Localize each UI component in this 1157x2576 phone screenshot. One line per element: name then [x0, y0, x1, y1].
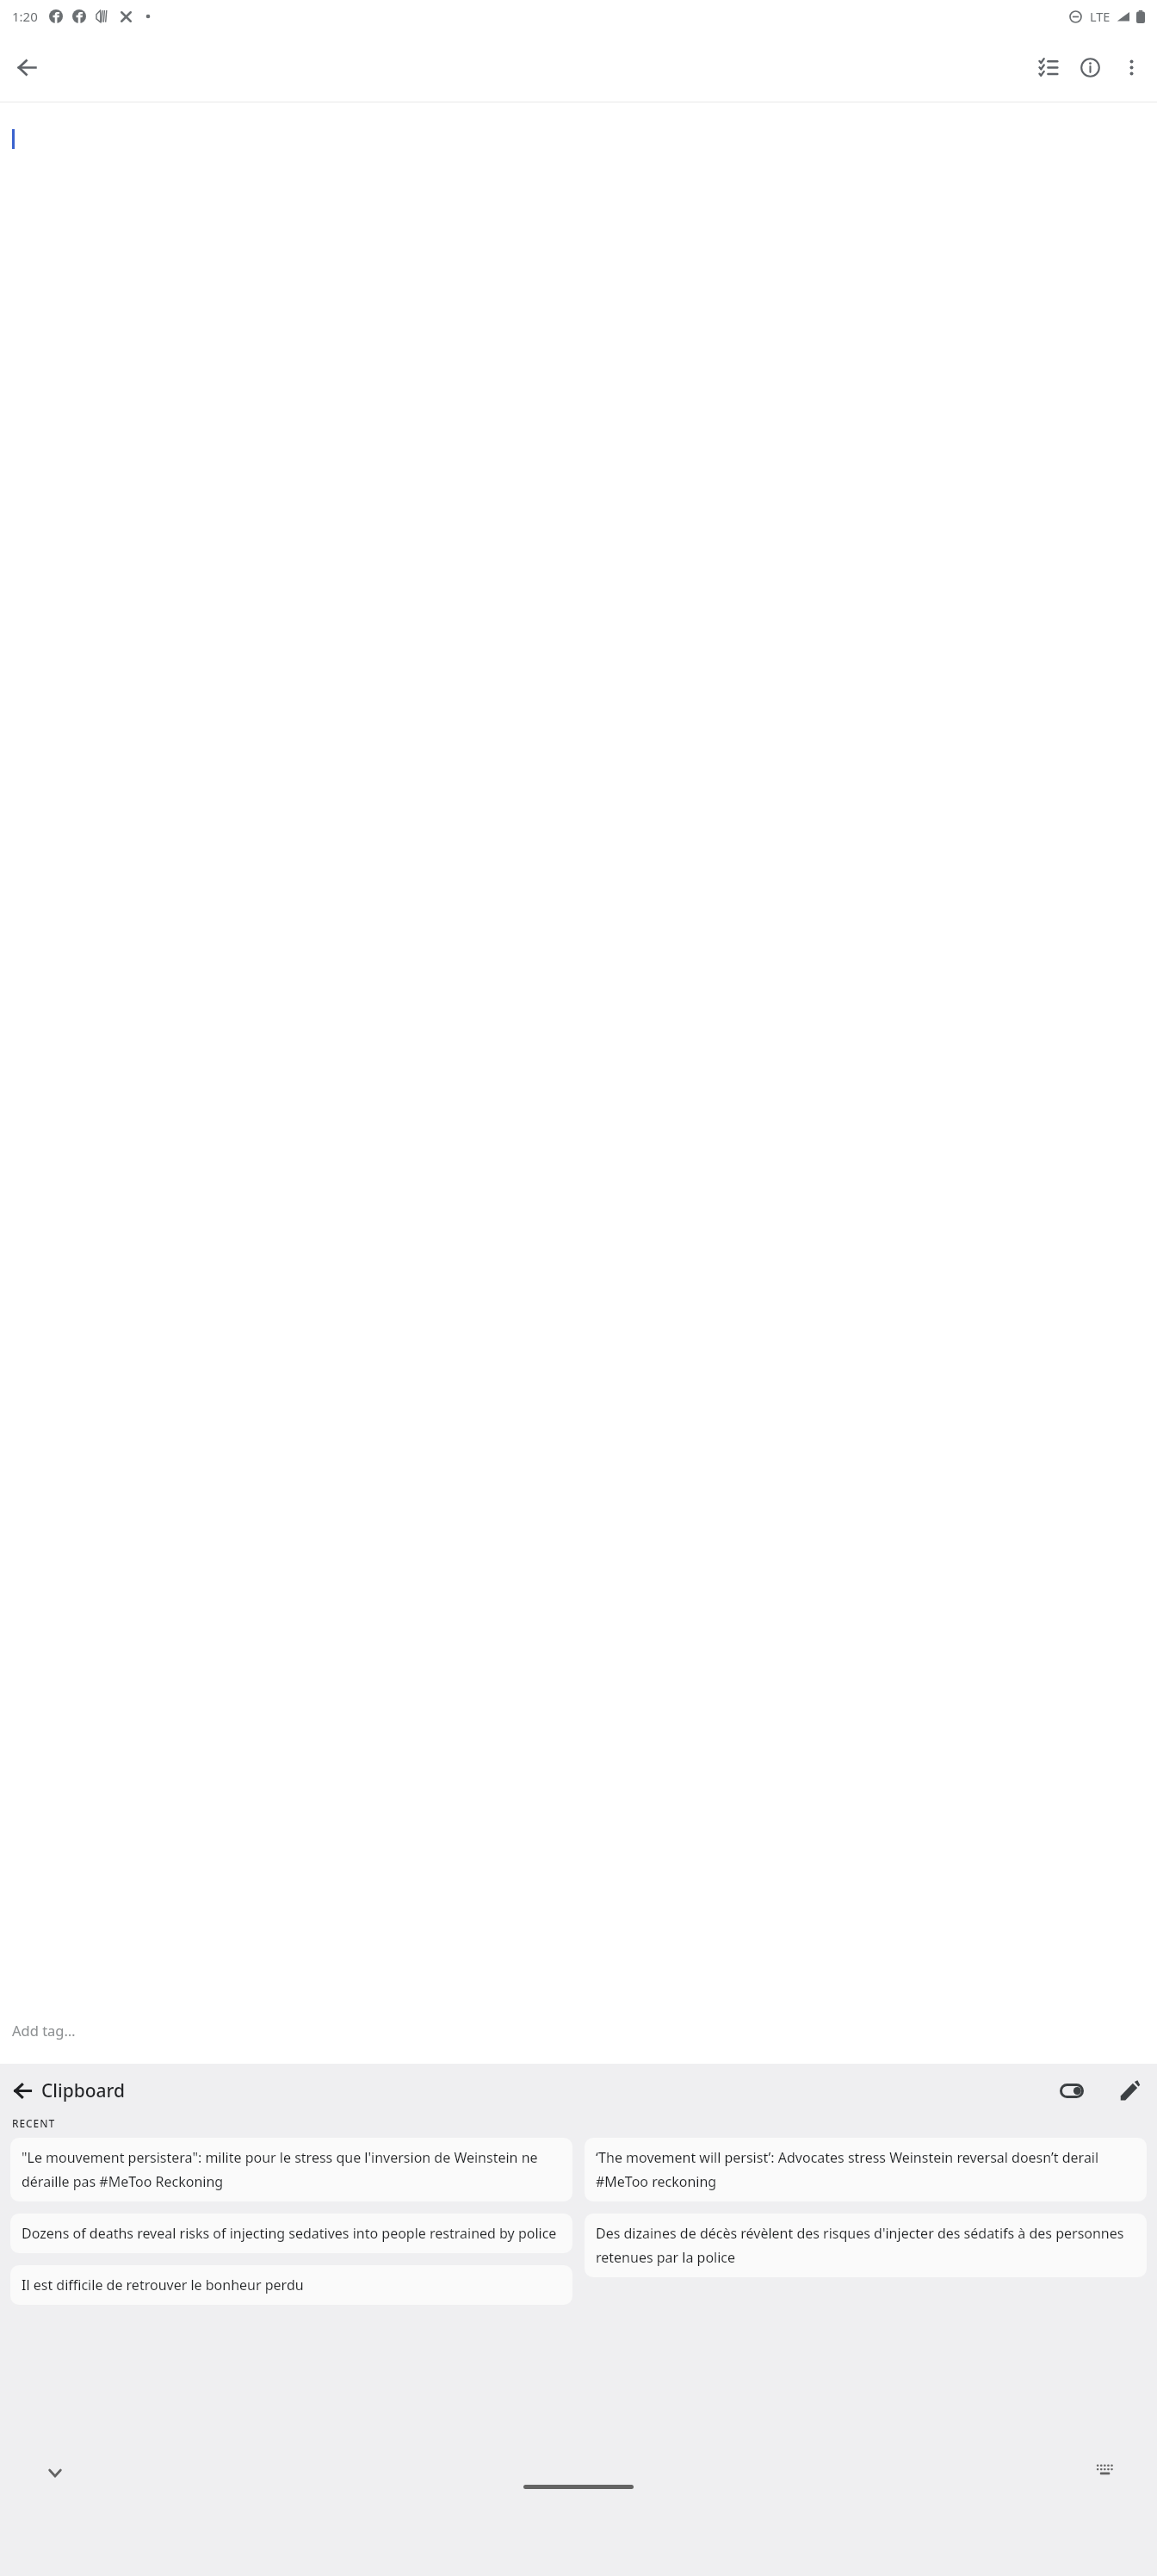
- button[interactable]: Il est difficile de retrouver le bonheur…: [10, 2265, 572, 2305]
- staticText: 1:20: [12, 8, 38, 25]
- button[interactable]: Checklist: [1028, 46, 1069, 88]
- staticText: LTE: [1090, 8, 1111, 25]
- staticText: ‘The movement will persist’: Advocates s…: [596, 2148, 1135, 2191]
- staticText: Dozens of deaths reveal risks of injecti…: [22, 2224, 557, 2243]
- button[interactable]: Hide keyboard: [34, 2452, 76, 2493]
- staticText: RECENT: [12, 2116, 56, 2130]
- staticText: Clipboard: [41, 2078, 126, 2103]
- button[interactable]: Toggle clipboard: [1052, 2071, 1092, 2110]
- button[interactable]: Switch keyboard: [1085, 2449, 1126, 2490]
- staticText: Des dizaines de décès révèlent des risqu…: [596, 2224, 1135, 2267]
- staticText: "Le mouvement persistera": milite pour l…: [22, 2148, 561, 2191]
- button[interactable]: "Le mouvement persistera": milite pour l…: [10, 2138, 572, 2201]
- button[interactable]: More options: [1111, 46, 1152, 88]
- staticText: Add tag…: [12, 2021, 76, 2040]
- button[interactable]: Dozens of deaths reveal risks of injecti…: [10, 2214, 572, 2253]
- button[interactable]: Clipboard: [3, 2071, 138, 2109]
- button[interactable]: Info: [1069, 46, 1111, 88]
- button[interactable]: ‘The movement will persist’: Advocates s…: [585, 2138, 1147, 2201]
- button[interactable]: Edit: [1111, 2071, 1150, 2110]
- button[interactable]: Back: [6, 46, 47, 88]
- staticText: Il est difficile de retrouver le bonheur…: [22, 2276, 304, 2294]
- button[interactable]: Des dizaines de décès révèlent des risqu…: [585, 2214, 1147, 2277]
